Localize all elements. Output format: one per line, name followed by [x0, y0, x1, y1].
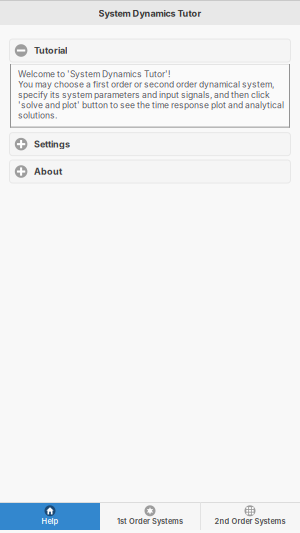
button[interactable]: About	[9, 160, 290, 183]
staticText: Help	[41, 517, 58, 526]
staticText: Tutorial	[34, 45, 67, 56]
button[interactable]: Tutorial	[9, 39, 290, 62]
staticText: 2nd Order Systems	[214, 517, 285, 526]
staticText: System Dynamics Tutor	[98, 8, 201, 19]
button[interactable]: Settings	[9, 133, 290, 156]
staticText: About	[34, 166, 62, 177]
button[interactable]: 1st Order Systems	[100, 502, 200, 530]
staticText: Welcome to 'System Dynamics Tutor'! You …	[18, 69, 284, 121]
button[interactable]: 2nd Order Systems	[200, 502, 300, 530]
staticText: 1st Order Systems	[117, 517, 183, 526]
staticText: Settings	[34, 139, 70, 150]
button[interactable]: Help	[0, 502, 100, 530]
